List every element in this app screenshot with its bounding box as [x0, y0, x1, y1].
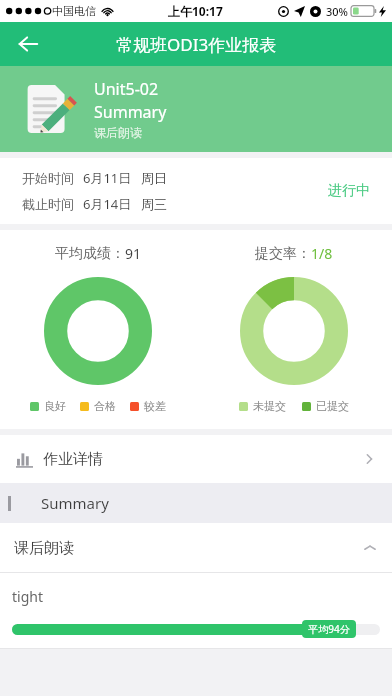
staticText: 91: [125, 244, 142, 263]
staticText: 平均成绩：: [55, 245, 125, 263]
staticText: 6月11日: [83, 169, 132, 187]
staticText: 课后朗读: [14, 539, 74, 558]
staticText: 周三: [141, 196, 167, 212]
staticText: 作业详情: [43, 450, 103, 469]
button[interactable]: 课后朗读: [0, 523, 392, 573]
staticText: 开始时间: [22, 170, 74, 186]
staticText: 良好: [44, 399, 66, 413]
staticText: 上午10:17: [168, 3, 223, 19]
staticText: 1/8: [311, 244, 333, 263]
staticText: 未提交: [253, 399, 286, 413]
staticText: 周日: [141, 170, 167, 186]
staticText: 6月14日: [83, 195, 132, 213]
staticText: 已提交: [316, 399, 349, 413]
staticText: 中国电信: [52, 4, 96, 18]
staticText: 合格: [94, 399, 116, 413]
staticText: 课后朗读: [94, 125, 142, 140]
staticText: 截止时间: [22, 196, 74, 212]
staticText: 30%: [326, 4, 348, 19]
staticText: Summary: [41, 493, 109, 513]
staticText: Unit5-02: [94, 78, 159, 100]
staticText: 较差: [144, 399, 166, 413]
button[interactable]: Back: [8, 24, 48, 64]
staticText: Summary: [94, 101, 167, 123]
button[interactable]: 作业详情: [0, 435, 392, 483]
staticText: 进行中: [328, 182, 370, 200]
staticText: 提交率：: [255, 245, 311, 263]
staticText: tight: [12, 587, 43, 606]
staticText: 平均94分: [308, 622, 350, 636]
staticText: 常规班ODI3作业报表: [116, 33, 277, 56]
